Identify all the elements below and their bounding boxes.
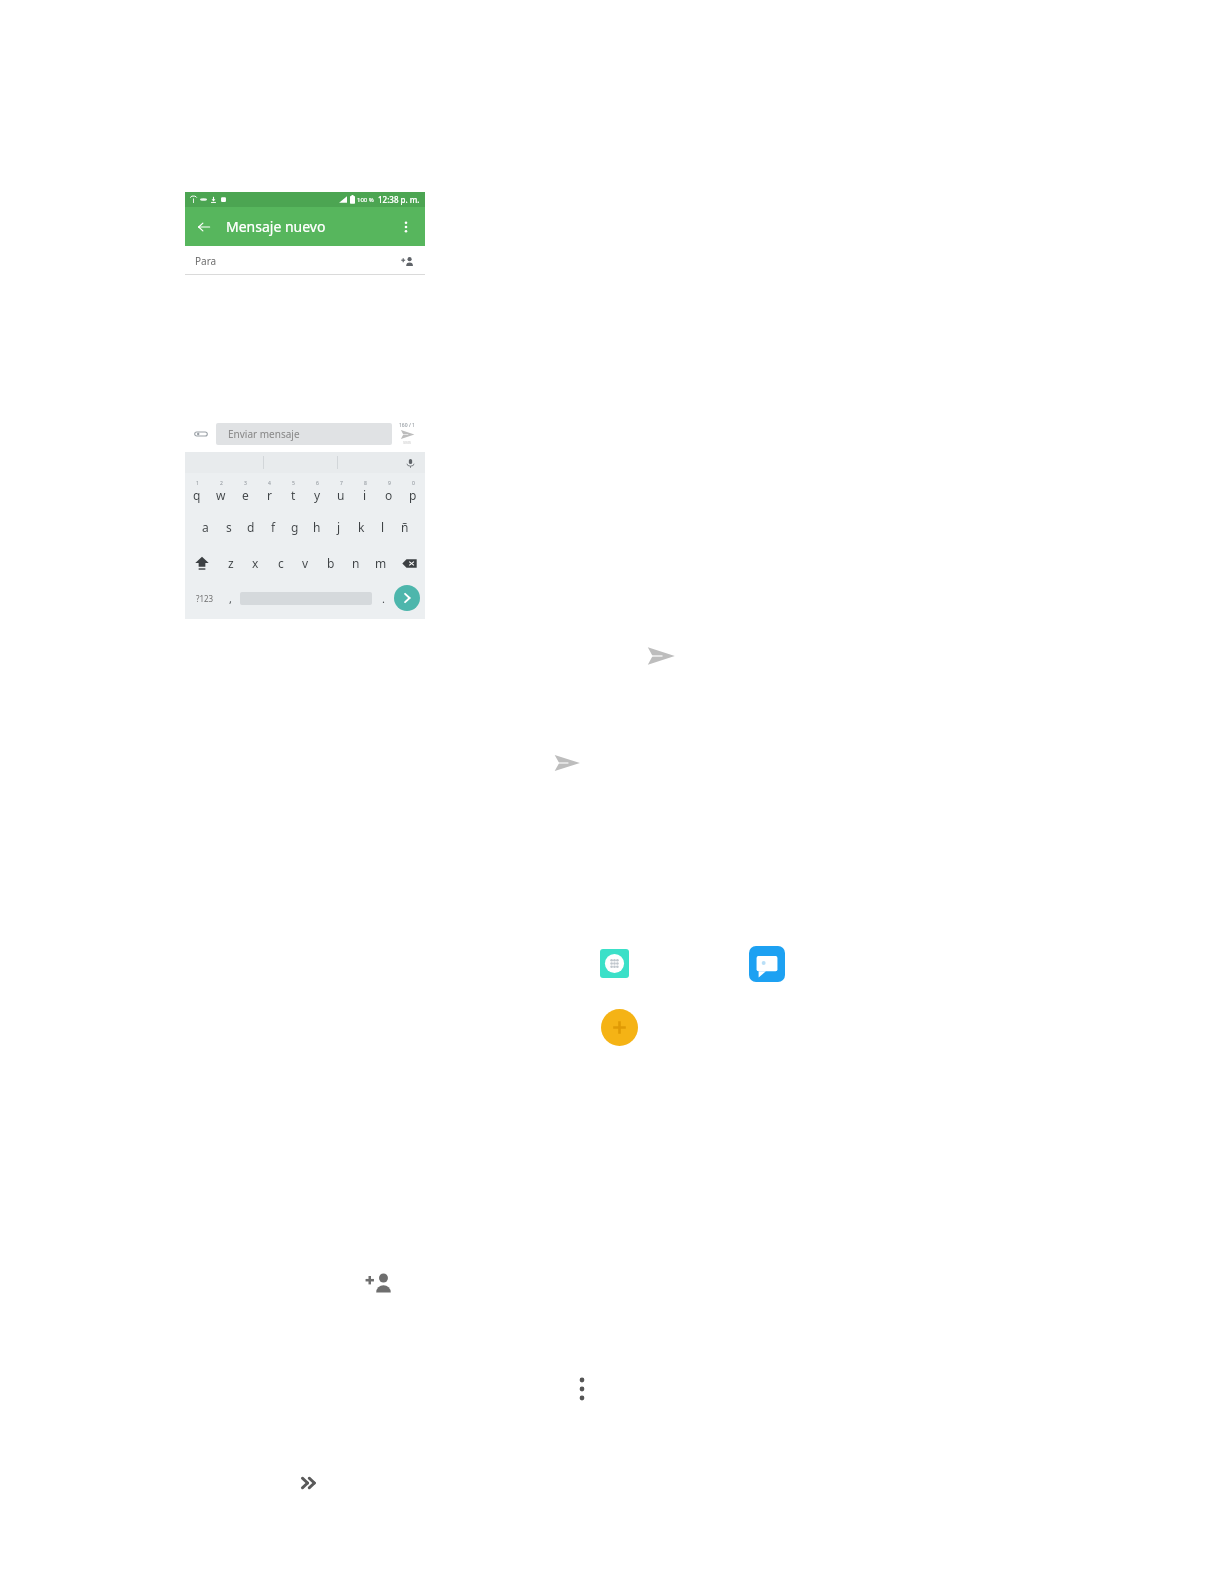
button[interactable]: More options	[397, 218, 415, 236]
button[interactable]: ,	[220, 581, 240, 615]
staticText: 6	[316, 480, 319, 487]
button[interactable]: Back	[195, 218, 213, 236]
staticText: n	[352, 555, 360, 571]
button[interactable]: g	[284, 509, 306, 545]
staticText: a	[202, 519, 209, 535]
staticText: ?123	[196, 593, 214, 604]
staticText: p	[409, 487, 417, 503]
button[interactable]: Enter	[394, 585, 420, 611]
staticText: 9	[388, 480, 391, 487]
staticText: f	[271, 519, 276, 535]
button[interactable]: Enviar mensaje	[216, 423, 392, 445]
button[interactable]: 2	[209, 473, 233, 509]
staticText: l	[381, 519, 385, 535]
button[interactable]: Backspace	[393, 545, 425, 581]
button[interactable]: Expand	[296, 1468, 324, 1498]
button[interactable]: Messages	[749, 946, 785, 982]
button[interactable]: m	[368, 545, 393, 581]
button[interactable]: Attach	[192, 425, 210, 443]
staticText: 3	[244, 480, 247, 487]
button[interactable]: ñ	[394, 509, 416, 545]
button[interactable]: s	[217, 509, 240, 545]
button[interactable]: Shift	[185, 545, 218, 581]
staticText: .	[382, 591, 385, 606]
button[interactable]: 0	[401, 473, 425, 509]
staticText: h	[313, 519, 321, 535]
staticText: v	[302, 555, 309, 571]
button[interactable]: Add	[601, 1009, 638, 1046]
staticText: x	[252, 555, 259, 571]
staticText: 4	[268, 480, 271, 487]
staticText: j	[337, 519, 341, 535]
button[interactable]: j	[328, 509, 350, 545]
staticText: Para	[195, 254, 217, 268]
button[interactable]: 8	[353, 473, 377, 509]
button[interactable]: 6	[305, 473, 329, 509]
staticText: 2	[220, 480, 223, 487]
staticText: e	[242, 487, 249, 503]
button[interactable]: d	[240, 509, 262, 545]
button[interactable]: Send	[550, 746, 583, 779]
button[interactable]: 5	[281, 473, 305, 509]
button[interactable]: More options	[570, 1372, 594, 1406]
staticText: i	[363, 487, 367, 503]
staticText: g	[291, 519, 299, 535]
staticText: k	[358, 519, 365, 535]
staticText: m	[375, 555, 387, 571]
staticText: u	[337, 487, 345, 503]
staticText: b	[327, 555, 335, 571]
button[interactable]: 3	[233, 473, 257, 509]
button[interactable]: l	[372, 509, 394, 545]
button[interactable]: v	[293, 545, 318, 581]
staticText: ,	[229, 591, 232, 606]
staticText: z	[228, 555, 234, 571]
button[interactable]: a	[194, 509, 217, 545]
staticText: 12:38 p. m.	[378, 194, 420, 205]
staticText: 0	[412, 480, 415, 487]
button[interactable]: b	[318, 545, 343, 581]
button[interactable]: 1	[185, 473, 209, 509]
staticText: SMS	[403, 440, 412, 445]
staticText: ñ	[401, 519, 409, 535]
button[interactable]: 7	[329, 473, 353, 509]
button[interactable]: 9	[377, 473, 401, 509]
button[interactable]: c	[268, 545, 293, 581]
staticText: y	[314, 487, 321, 503]
button[interactable]: z	[218, 545, 243, 581]
button[interactable]: 4	[257, 473, 281, 509]
staticText: 7	[340, 480, 343, 487]
button[interactable]: Voice input	[403, 456, 417, 470]
button[interactable]: x	[243, 545, 268, 581]
button[interactable]: k	[350, 509, 372, 545]
staticText: 1	[196, 480, 199, 487]
staticText: 5	[292, 480, 295, 487]
staticText: r	[267, 487, 272, 503]
staticText: d	[247, 519, 255, 535]
staticText: Mensaje nuevo	[226, 217, 326, 236]
button[interactable]: h	[306, 509, 328, 545]
button[interactable]: ?123	[190, 581, 220, 615]
staticText: o	[385, 487, 393, 503]
staticText: Enviar mensaje	[228, 427, 300, 441]
button[interactable]: Send	[643, 638, 679, 674]
staticText: q	[193, 487, 201, 503]
staticText: 8	[364, 480, 367, 487]
staticText: c	[278, 555, 284, 571]
button[interactable]: Apps	[600, 949, 629, 978]
staticText: 100 %	[357, 196, 374, 204]
button[interactable]: n	[343, 545, 368, 581]
button[interactable]: f	[262, 509, 284, 545]
button[interactable]: Add recipient	[399, 253, 415, 269]
button[interactable]: Add recipient	[362, 1266, 396, 1300]
button[interactable]: .	[372, 581, 394, 615]
staticText: 160 / 1	[399, 422, 415, 429]
staticText: t	[291, 487, 296, 503]
staticText: w	[216, 487, 226, 503]
button[interactable]: Send	[396, 422, 418, 445]
staticText: s	[226, 519, 232, 535]
